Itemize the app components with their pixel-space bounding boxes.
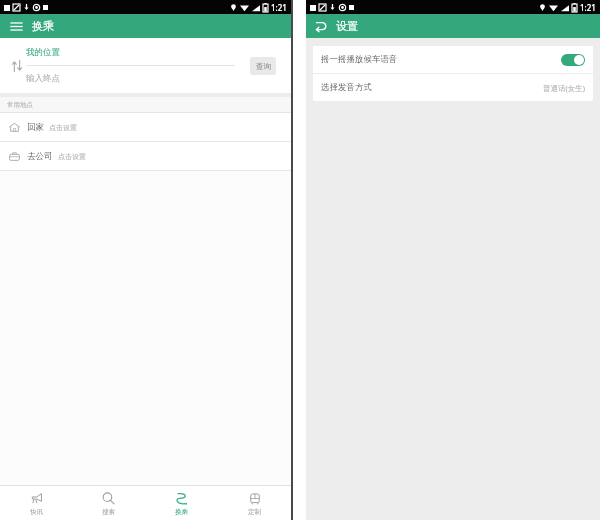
staticText: 查询 [256,62,271,71]
button[interactable]: 我的位置 [26,47,235,58]
staticText: 1:21 [271,2,287,13]
staticText: 普通话(女生) [543,83,585,93]
staticText: 1:21 [580,2,596,13]
staticText: 设置 [336,19,358,33]
button[interactable]: 输入终点 [26,73,235,84]
staticText: 输入终点 [26,73,60,84]
staticText: 常用地点 [7,101,33,109]
staticText: 我的位置 [26,47,60,58]
staticText: 换乘 [32,19,54,33]
button[interactable]: 回家 [0,113,291,141]
button[interactable]: Back [313,18,329,34]
button[interactable]: Menu [8,18,24,34]
staticText: 选择发音方式 [321,82,372,93]
button[interactable]: 换乘 [145,486,218,520]
staticText: 点击设置 [58,152,86,161]
button[interactable]: 定制 [218,486,291,520]
button[interactable]: Toggle shake to play voice [561,54,585,66]
staticText: 摇一摇播放候车语音 [321,54,398,65]
staticText: 点击设置 [49,123,77,132]
button[interactable]: 搜索 [72,486,145,520]
button[interactable]: 快讯 [0,486,72,520]
staticText: 快讯 [30,508,43,516]
staticText: 回家 [27,122,44,133]
button[interactable]: 选择发音方式 [313,74,593,101]
staticText: 定制 [248,508,261,516]
staticText: 换乘 [175,508,188,516]
button[interactable]: Swap start and destination [8,57,26,75]
staticText: 搜索 [102,508,115,516]
button[interactable]: 去公司 [0,142,291,170]
button[interactable]: 摇一摇播放候车语音 [313,46,593,73]
button[interactable]: 查询 [250,57,276,75]
staticText: 去公司 [27,151,53,162]
